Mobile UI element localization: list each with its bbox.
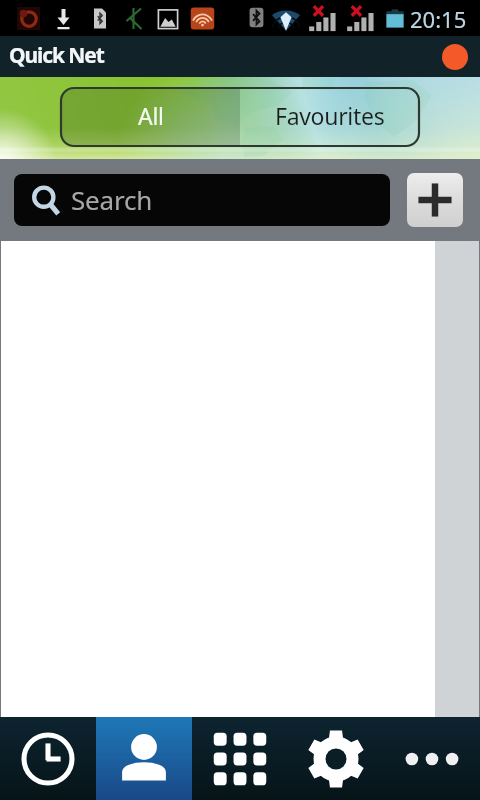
button[interactable]: Settings xyxy=(288,717,384,800)
button[interactable]: Add xyxy=(407,173,463,227)
button[interactable]: Status xyxy=(442,44,468,70)
staticText: Quick Net xyxy=(9,41,104,70)
button[interactable]: All xyxy=(61,88,240,146)
staticText: Favourites xyxy=(275,100,385,131)
staticText: All xyxy=(138,100,164,131)
staticText: 20:15 xyxy=(410,4,467,34)
button[interactable]: Apps xyxy=(192,717,288,800)
button[interactable]: Search xyxy=(14,174,390,226)
button[interactable]: More xyxy=(384,717,480,800)
button[interactable]: Contacts xyxy=(96,717,192,800)
button[interactable]: Favourites xyxy=(240,88,419,146)
staticText: Search xyxy=(71,182,153,217)
button[interactable]: Recent xyxy=(0,717,96,800)
